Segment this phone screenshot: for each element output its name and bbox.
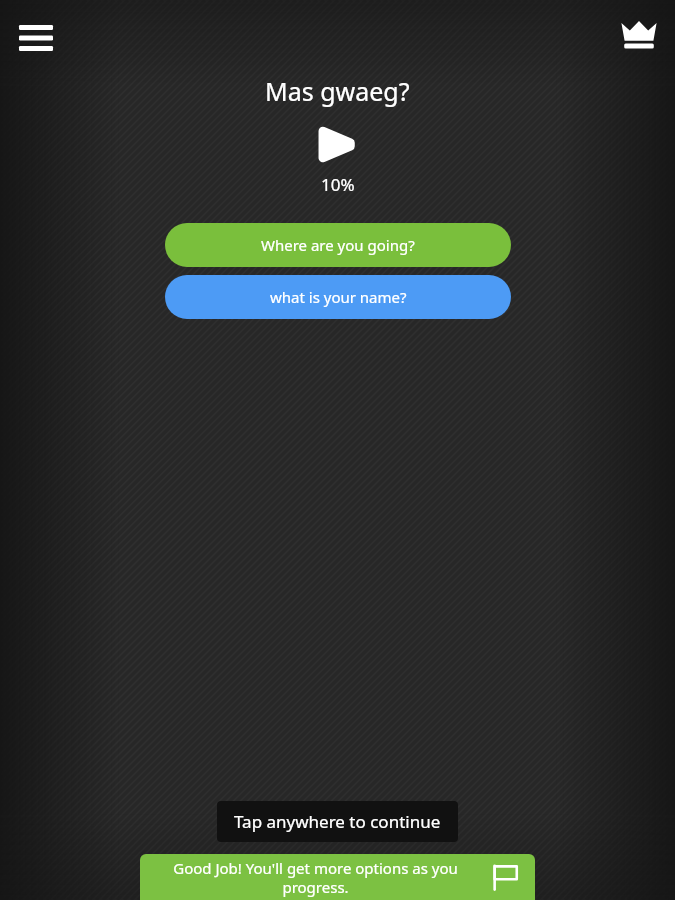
button[interactable]: Play	[312, 118, 364, 170]
staticText: Where are you going?	[261, 235, 415, 255]
button[interactable]: Where are you going?	[165, 223, 511, 267]
button[interactable]: Good Job! You'll get more options as you…	[140, 854, 535, 900]
staticText: Tap anywhere to continue	[234, 810, 441, 833]
staticText: Mas gwaeg?	[265, 74, 410, 108]
button[interactable]: Menu	[0, 0, 675, 900]
staticText: 10%	[321, 173, 355, 196]
button[interactable]: Tap anywhere to continue	[217, 801, 458, 842]
button[interactable]: Menu	[12, 14, 60, 62]
button[interactable]: Report	[487, 859, 523, 895]
staticText: Good Job! You'll get more options as you…	[154, 858, 477, 897]
staticText: what is your name?	[270, 287, 407, 307]
button[interactable]: what is your name?	[165, 275, 511, 319]
button[interactable]: Premium	[613, 8, 665, 60]
